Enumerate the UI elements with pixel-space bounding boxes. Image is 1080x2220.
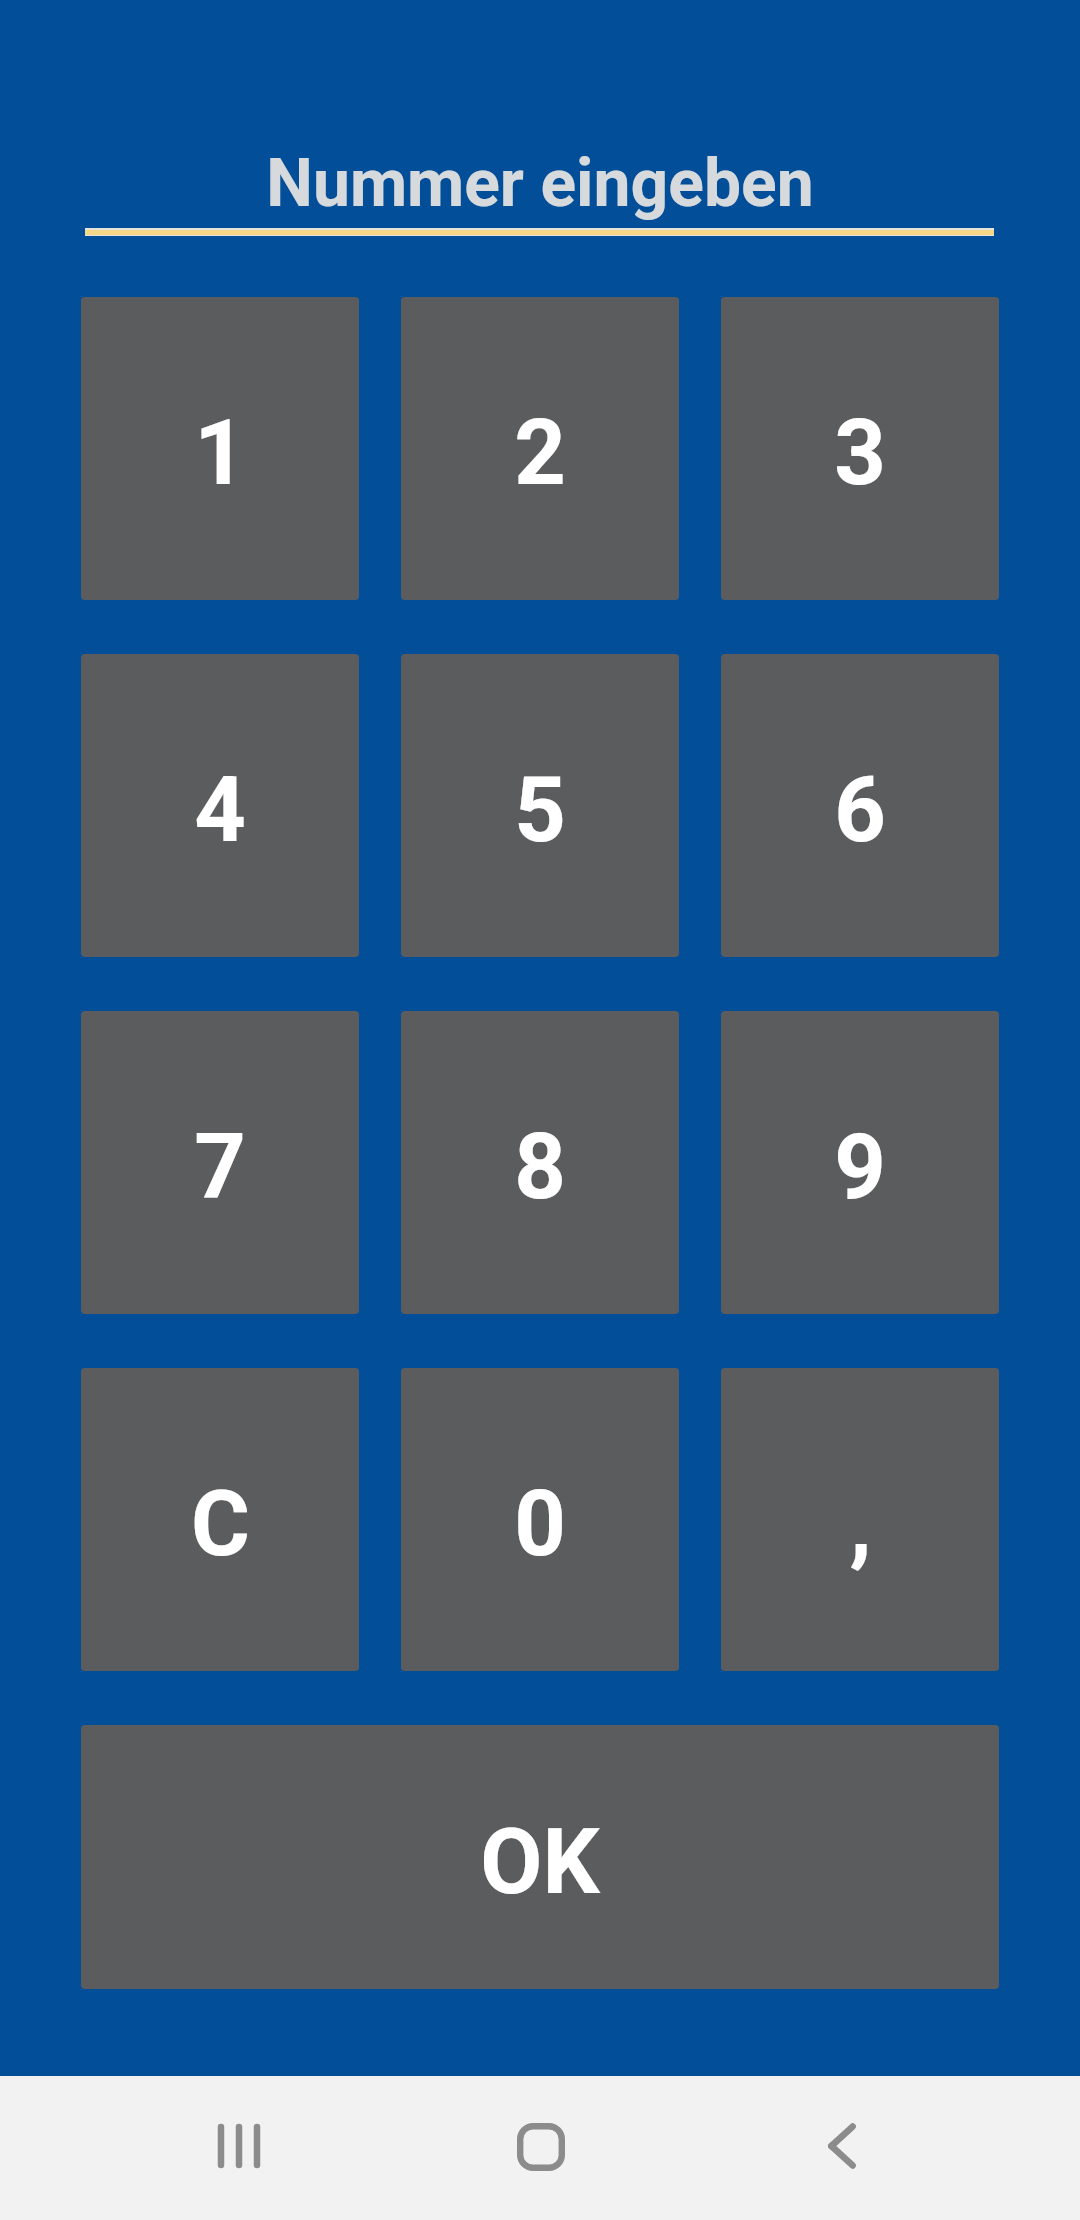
staticText: OK — [480, 1810, 600, 1915]
button[interactable]: 9 — [721, 1011, 999, 1314]
button[interactable]: 5 — [401, 654, 679, 957]
button[interactable]: 3 — [721, 297, 999, 600]
staticText: Nummer eingeben — [0, 145, 1080, 222]
button[interactable]: 2 — [401, 297, 679, 600]
staticText: 1 — [194, 401, 246, 506]
button[interactable]: Home — [481, 2087, 601, 2207]
staticText: 6 — [834, 758, 886, 863]
staticText: 2 — [514, 401, 566, 506]
staticText: , — [849, 1472, 872, 1577]
button[interactable]: 0 — [401, 1368, 679, 1671]
staticText: 4 — [194, 758, 246, 863]
button[interactable]: Recent apps — [179, 2086, 299, 2206]
button[interactable]: 1 — [81, 297, 359, 600]
button[interactable]: 6 — [721, 654, 999, 957]
staticText: 5 — [514, 758, 566, 863]
button[interactable]: 7 — [81, 1011, 359, 1314]
staticText: 9 — [834, 1115, 886, 1220]
button[interactable]: OK — [81, 1725, 999, 1989]
staticText: 7 — [194, 1115, 246, 1220]
button[interactable]: Back — [782, 2086, 902, 2206]
staticText: 3 — [834, 401, 886, 506]
button[interactable]: 8 — [401, 1011, 679, 1314]
button[interactable]: 4 — [81, 654, 359, 957]
button[interactable]: , — [721, 1368, 999, 1671]
button[interactable]: C — [81, 1368, 359, 1671]
staticText: C — [191, 1472, 250, 1577]
staticText: 0 — [514, 1472, 566, 1577]
staticText: 8 — [514, 1115, 566, 1220]
